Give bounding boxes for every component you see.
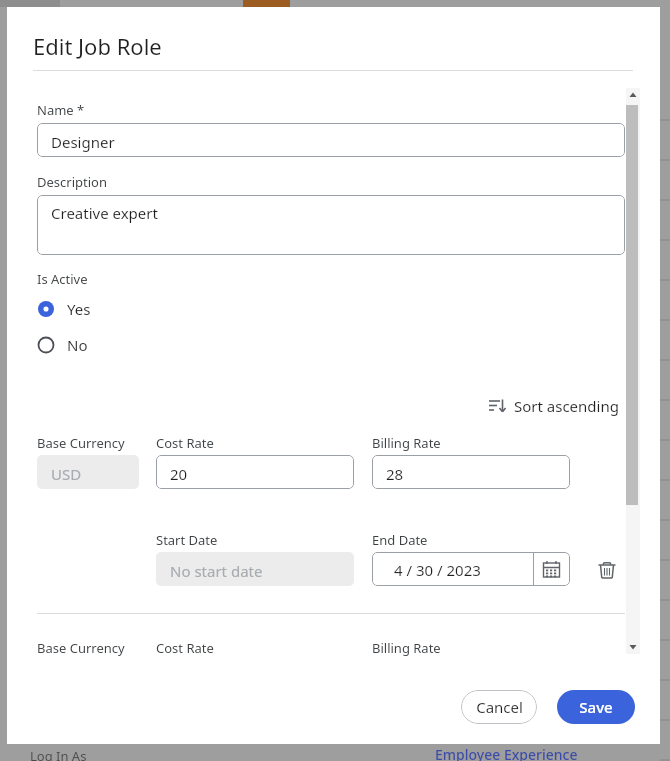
button[interactable]: Save	[557, 690, 635, 724]
staticText: Save	[579, 697, 613, 717]
staticText: Cancel	[476, 697, 523, 717]
staticText: Is Active	[37, 270, 88, 288]
staticText: No start date	[170, 561, 263, 581]
staticText: Employee Experience	[435, 745, 578, 761]
button[interactable]: Delete row	[595, 559, 619, 583]
button[interactable]: 4 / 30 / 2023	[372, 552, 570, 586]
button[interactable]: Creative expert	[37, 195, 625, 255]
staticText: Creative expert	[51, 203, 158, 223]
staticText: Yes	[67, 299, 91, 319]
button[interactable]: Yes	[37, 299, 91, 319]
staticText: 28	[386, 464, 404, 484]
button[interactable]: Open calendar	[533, 552, 570, 586]
staticText: Edit Job Role	[33, 31, 162, 61]
staticText: Base Currency	[37, 639, 125, 657]
button[interactable]: 28	[372, 455, 570, 489]
button[interactable]: Scroll down	[626, 640, 640, 654]
other: Sort ascending	[488, 397, 506, 415]
staticText: No	[67, 335, 88, 355]
button[interactable]: No	[37, 335, 88, 355]
button[interactable]: Scroll up	[626, 88, 640, 102]
staticText: 20	[170, 464, 188, 484]
staticText: Base Currency	[37, 434, 125, 452]
staticText: 4 / 30 / 2023	[394, 560, 481, 580]
button[interactable]: 20	[156, 455, 354, 489]
button[interactable]: Sort ascending	[488, 395, 619, 417]
staticText: Billing Rate	[372, 434, 441, 452]
staticText: Cost Rate	[156, 434, 214, 452]
staticText: USD	[51, 464, 82, 484]
staticText: Cost Rate	[156, 639, 214, 657]
staticText: Description	[37, 173, 107, 191]
button[interactable]: Cancel	[461, 690, 537, 724]
staticText: Billing Rate	[372, 639, 441, 657]
staticText: Start Date	[156, 531, 218, 549]
staticText: Log In As	[30, 747, 87, 761]
staticText: Designer	[51, 132, 115, 152]
staticText: Name *	[37, 101, 85, 119]
staticText: End Date	[372, 531, 428, 549]
button[interactable]: Designer	[37, 123, 625, 157]
staticText: Sort ascending	[514, 396, 619, 416]
